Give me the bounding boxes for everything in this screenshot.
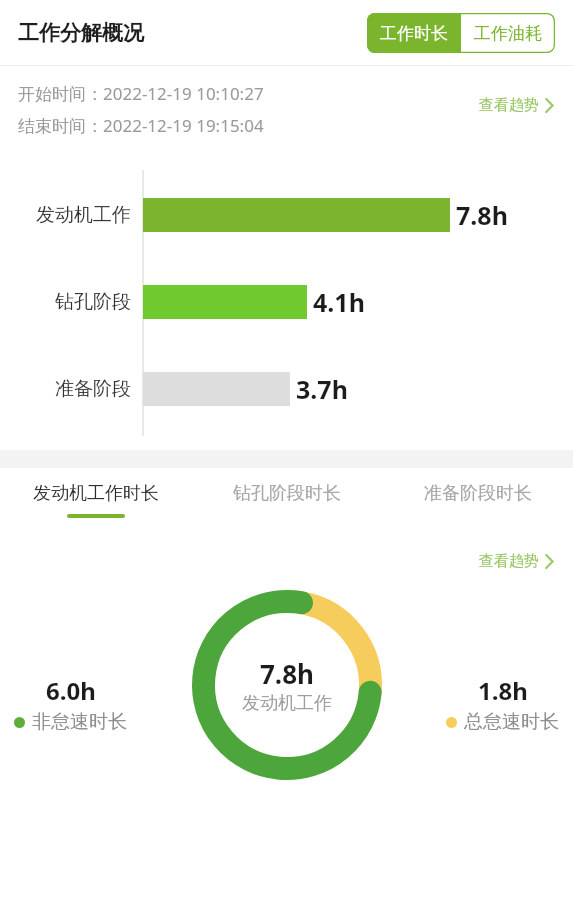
staticText: 准备阶段 xyxy=(55,377,131,401)
staticText: 7.8h xyxy=(456,198,508,232)
staticText: 3.7h xyxy=(296,372,348,406)
staticText: 查看趋势 xyxy=(479,552,539,571)
staticText: 查看趋势 xyxy=(479,96,539,115)
staticText: 结束时间：2022-12-19 19:15:04 xyxy=(18,114,264,137)
staticText: 4.1h xyxy=(313,285,365,319)
button[interactable]: 发动机工作时长 xyxy=(0,482,191,518)
staticText: 1.8h xyxy=(478,674,528,707)
button[interactable]: 查看趋势 xyxy=(473,92,559,119)
staticText: 总怠速时长 xyxy=(464,710,559,734)
staticText: 发动机工作 xyxy=(36,203,131,227)
staticText: 发动机工作时长 xyxy=(33,482,159,505)
staticText: 工作时长 xyxy=(380,23,448,44)
staticText: 准备阶段时长 xyxy=(424,482,532,505)
staticText: 发动机工作 xyxy=(242,692,332,715)
button[interactable]: 准备阶段时长 xyxy=(382,482,573,518)
button[interactable]: 工作油耗 xyxy=(461,13,555,53)
staticText: 钻孔阶段时长 xyxy=(233,482,341,505)
staticText: 钻孔阶段 xyxy=(55,290,131,314)
staticText: 工作分解概况 xyxy=(18,20,144,46)
button[interactable]: 工作时长 xyxy=(367,13,461,53)
staticText: 6.0h xyxy=(46,674,96,707)
button[interactable]: 查看趋势 xyxy=(473,548,559,575)
staticText: 7.8h xyxy=(260,656,314,691)
staticText: 开始时间：2022-12-19 10:10:27 xyxy=(18,82,264,105)
staticText: 工作油耗 xyxy=(474,23,542,44)
staticText: 非怠速时长 xyxy=(32,710,127,734)
button[interactable]: 钻孔阶段时长 xyxy=(191,482,382,518)
